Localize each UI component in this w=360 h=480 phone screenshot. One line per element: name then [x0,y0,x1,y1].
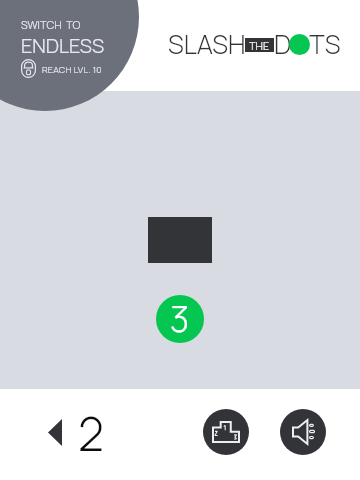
staticText: ENDLESS [21,32,105,59]
staticText: DOTS [274,26,341,62]
staticText: SLASH [168,26,246,62]
staticText: SWITCH TO [21,17,81,32]
button[interactable]: Leaderboard [203,409,249,455]
staticText: 3 [170,295,190,343]
staticText: REACH LVL. 10 [42,63,102,75]
button[interactable] [0,0,139,111]
staticText: 2 [78,402,104,465]
staticText: THE [249,38,270,52]
button[interactable]: Previous level [41,412,68,452]
button[interactable]: Sound [280,409,326,455]
